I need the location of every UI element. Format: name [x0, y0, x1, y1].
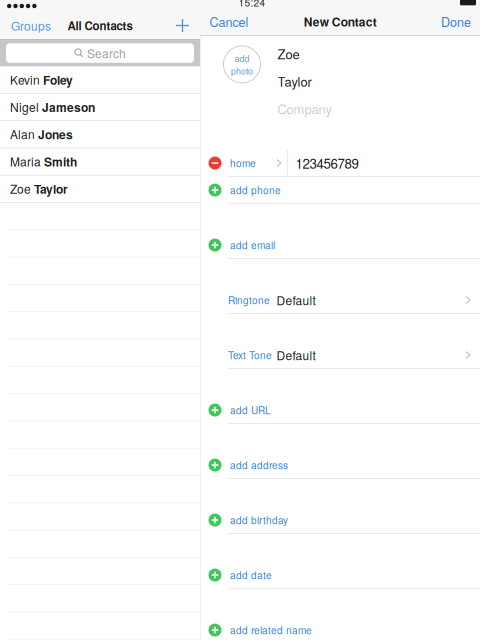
staticText: add: [234, 52, 249, 64]
button[interactable]: add date: [200, 562, 480, 589]
staticText: Cancel: [209, 12, 248, 31]
staticText: Search: [87, 44, 126, 62]
button[interactable]: Done: [441, 8, 480, 35]
staticText: Text Tone: [228, 348, 272, 362]
button[interactable]: home: [200, 150, 480, 177]
staticText: Default: [276, 346, 315, 364]
button[interactable]: Add contact: [176, 12, 200, 39]
staticText: Maria Smith: [10, 153, 77, 170]
staticText: Done: [441, 12, 471, 31]
staticText: add phone: [230, 183, 281, 197]
staticText: Kevin Foley: [10, 71, 73, 88]
staticText: Alan Jones: [10, 126, 73, 143]
staticText: add email: [230, 238, 275, 252]
staticText: Zoe: [277, 44, 299, 63]
staticText: New Contact: [304, 13, 377, 30]
staticText: Nigel Jameson: [10, 98, 95, 115]
staticText: Groups: [11, 17, 51, 34]
staticText: Ringtone: [228, 293, 270, 307]
button[interactable]: add address: [200, 452, 480, 479]
staticText: Company: [277, 99, 331, 118]
staticText: photo: [231, 64, 253, 77]
staticText: All Contacts: [67, 17, 132, 34]
button[interactable]: Nigel Jameson: [0, 94, 200, 121]
staticText: Default: [276, 291, 315, 309]
button[interactable]: add URL: [200, 397, 480, 424]
button[interactable]: add email: [200, 232, 480, 259]
button[interactable]: Add photo: [200, 36, 262, 85]
staticText: add birthday: [230, 513, 288, 527]
button[interactable]: Cancel: [200, 8, 248, 35]
button[interactable]: add birthday: [200, 507, 480, 534]
staticText: add address: [230, 458, 288, 472]
button[interactable]: add related name: [200, 617, 480, 640]
staticText: 15:24: [238, 0, 265, 9]
button[interactable]: Groups: [0, 12, 51, 39]
staticText: Zoe Taylor: [10, 180, 68, 197]
button[interactable]: add phone: [200, 177, 480, 204]
staticText: add related name: [230, 623, 312, 637]
button[interactable]: Maria Smith: [0, 148, 200, 175]
staticText: home: [230, 156, 256, 170]
button[interactable]: Ringtone: [200, 287, 480, 314]
button[interactable]: Text Tone: [200, 342, 480, 369]
staticText: add date: [230, 568, 272, 582]
button[interactable]: Zoe Taylor: [0, 175, 200, 203]
staticText: 123456789: [296, 153, 359, 173]
staticText: Taylor: [277, 72, 311, 90]
button[interactable]: Kevin Foley: [0, 66, 200, 94]
button[interactable]: Alan Jones: [0, 121, 200, 148]
staticText: add URL: [230, 403, 271, 417]
button[interactable]: Search: [6, 43, 194, 63]
